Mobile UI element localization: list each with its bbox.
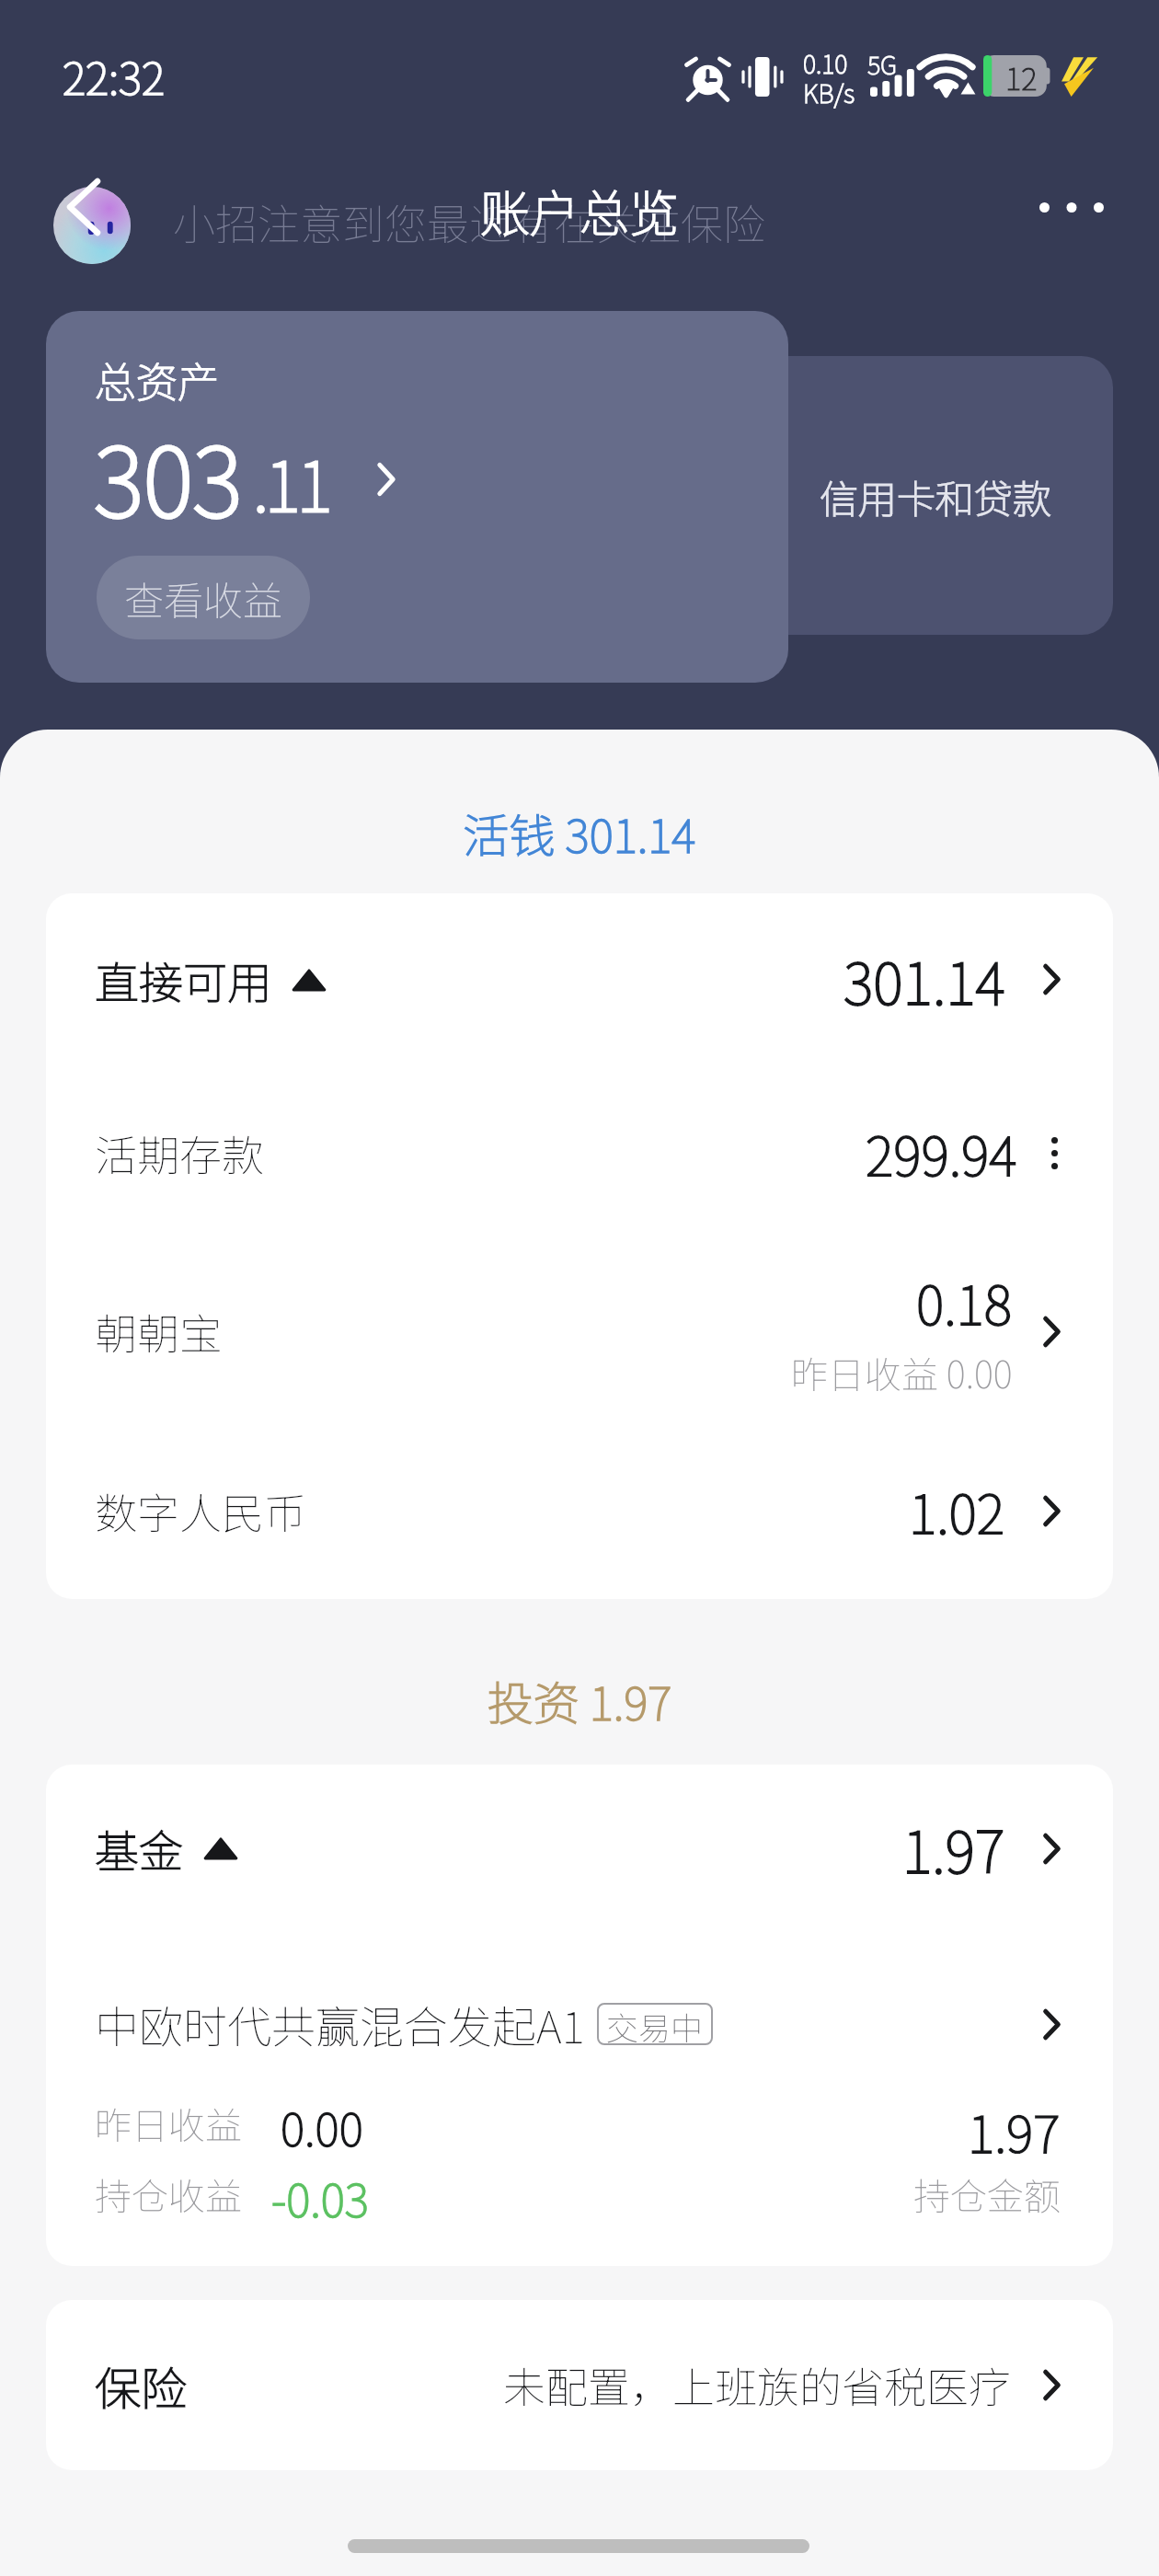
staticText: -0.03 [271,2164,369,2225]
staticText: 数字人民币 [95,1480,306,1542]
staticText: 持仓金额 [913,2168,1061,2221]
staticText: 0.00 [281,2093,363,2154]
staticText: 0.18 [916,1263,1013,1340]
staticText: 直接可用 [95,948,272,1012]
button[interactable]: 朝朝宝 [46,1240,1113,1422]
staticText: 未配置，上班族的省税医疗 [503,2354,1011,2416]
button[interactable]: 保险 [46,2300,1113,2470]
button[interactable]: 总资产 [46,311,788,683]
staticText: 1.97 [968,2093,1061,2154]
staticText: 持仓收益 [95,2168,242,2221]
staticText: 299.94 [866,1114,1017,1191]
staticText: 1.02 [909,1472,1005,1549]
staticText: 301.14 [843,938,1005,1021]
staticText: KB/s [803,75,855,110]
staticText: 活期存款 [95,1122,264,1184]
staticText: 朝朝宝 [95,1301,222,1363]
button[interactable]: 活期存款 [46,1065,1113,1240]
staticText: 基金 [95,1816,184,1880]
staticText: 昨日收益 [95,2097,242,2150]
button[interactable]: 直接可用 [46,893,1113,1065]
staticText: .11 [253,432,329,531]
button[interactable]: 基金 [46,1765,1113,1932]
staticText: 信用卡和贷款 [820,468,1052,524]
staticText: 投资 1.97 [0,1667,1159,1733]
staticText: 活钱 301.14 [0,799,1159,866]
staticText: 0.10 [803,45,848,81]
staticText: 查看收益 [124,569,282,627]
staticText: 保险 [95,2352,187,2419]
staticText: 小招注意到您最近有在关注保险 [173,191,765,253]
button[interactable]: 数字人民币 [46,1422,1113,1599]
staticText: 总资产 [95,350,220,409]
staticText: 1.97 [902,1807,1005,1890]
button[interactable]: 中欧时代共赢混合发起A1 [46,1932,1113,2266]
staticText: 12 [1005,55,1038,97]
staticText: 5G [867,46,897,82]
staticText: 22:32 [63,43,166,108]
button[interactable]: 信用卡和贷款 [708,356,1113,635]
button[interactable]: Back [44,164,136,252]
button[interactable]: 查看收益 [97,556,310,639]
button[interactable]: More options [1012,164,1131,250]
staticText: 中欧时代共赢混合发起A1 [95,1992,585,2056]
staticText: 账户总览 [480,174,679,246]
staticText: 303 [94,406,243,545]
staticText: 昨日收益 0.00 [791,1346,1013,1399]
staticText: 交易中 [606,2003,704,2045]
